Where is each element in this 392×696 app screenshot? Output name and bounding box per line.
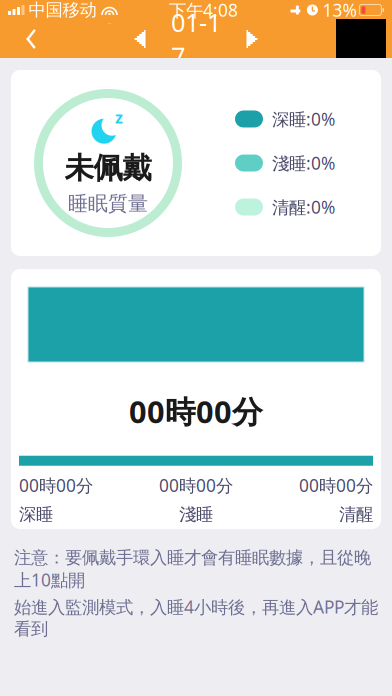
staticText: 00時00分	[19, 474, 93, 497]
staticText: 始進入監測模式，入睡4小時後，再進入APP才能看到	[14, 595, 378, 640]
button[interactable]: Next day	[239, 22, 265, 56]
staticText: 清醒	[339, 504, 373, 525]
staticText: 中国移动	[28, 0, 96, 21]
staticText: 清醒:0%	[272, 195, 335, 218]
button[interactable]: Back	[6, 19, 56, 59]
button[interactable]: Previous day	[127, 22, 153, 56]
staticText: 淺睡:0%	[272, 151, 335, 174]
staticText: 未佩戴	[64, 150, 151, 186]
staticText: 13%	[322, 0, 356, 21]
staticText: 00時00分	[129, 391, 263, 432]
staticText: 00時00分	[299, 474, 373, 497]
staticText: 注意：要佩戴手環入睡才會有睡眠數據，且從晚上10點開	[14, 547, 371, 591]
staticText: 下午4:08	[169, 0, 238, 21]
staticText: z	[115, 107, 123, 128]
staticText: 淺睡	[179, 504, 213, 525]
staticText: 深睡:0%	[272, 107, 335, 130]
staticText: 00時00分	[159, 474, 233, 497]
staticText: 睡眠質量	[68, 191, 148, 216]
staticText: 深睡	[19, 504, 53, 525]
staticText: 01-17	[171, 5, 221, 73]
